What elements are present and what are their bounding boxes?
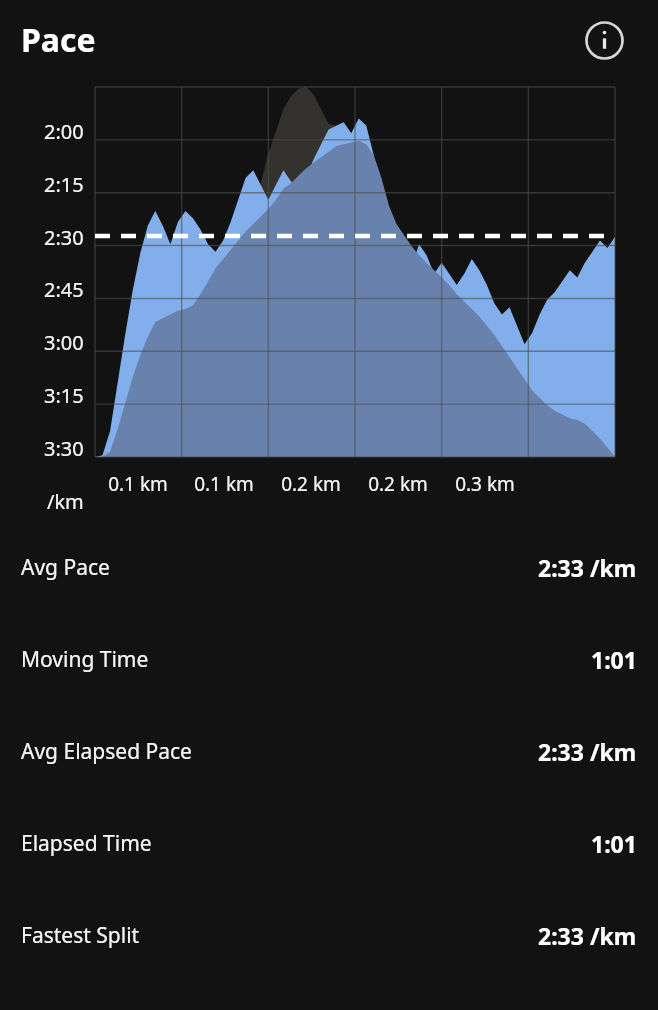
staticText: 2:00 — [44, 118, 84, 145]
staticText: 0.2 km — [368, 471, 428, 497]
staticText: 3:15 — [44, 382, 84, 409]
button[interactable]: Moving Time — [0, 613, 658, 705]
staticText: /km — [47, 488, 84, 515]
staticText: Pace — [21, 18, 96, 62]
staticText: 2:15 — [44, 171, 84, 198]
staticText: 0.2 km — [281, 471, 341, 497]
button[interactable]: Elapsed Time — [0, 797, 658, 889]
staticText: 2:33 /km — [538, 552, 637, 583]
staticText: Avg Elapsed Pace — [21, 737, 192, 766]
staticText: 1:01 — [591, 828, 637, 859]
staticText: 3:30 — [44, 435, 84, 462]
staticText: 2:30 — [44, 224, 84, 251]
button[interactable]: Avg Elapsed Pace — [0, 705, 658, 797]
staticText: Elapsed Time — [21, 829, 152, 858]
staticText: 1:01 — [591, 644, 637, 675]
staticText: 0.1 km — [108, 471, 168, 497]
staticText: 0.1 km — [194, 471, 254, 497]
staticText: 0.3 km — [455, 471, 515, 497]
staticText: 2:33 /km — [538, 920, 637, 951]
staticText: Fastest Split — [21, 921, 140, 950]
staticText: Avg Pace — [21, 553, 110, 582]
staticText: Moving Time — [21, 645, 149, 674]
staticText: 2:45 — [44, 276, 84, 303]
staticText: 3:00 — [44, 329, 84, 356]
button[interactable]: Avg Pace — [0, 521, 658, 613]
staticText: 2:33 /km — [538, 736, 637, 767]
button[interactable]: Information — [580, 16, 628, 64]
button[interactable]: Fastest Split — [0, 889, 658, 981]
